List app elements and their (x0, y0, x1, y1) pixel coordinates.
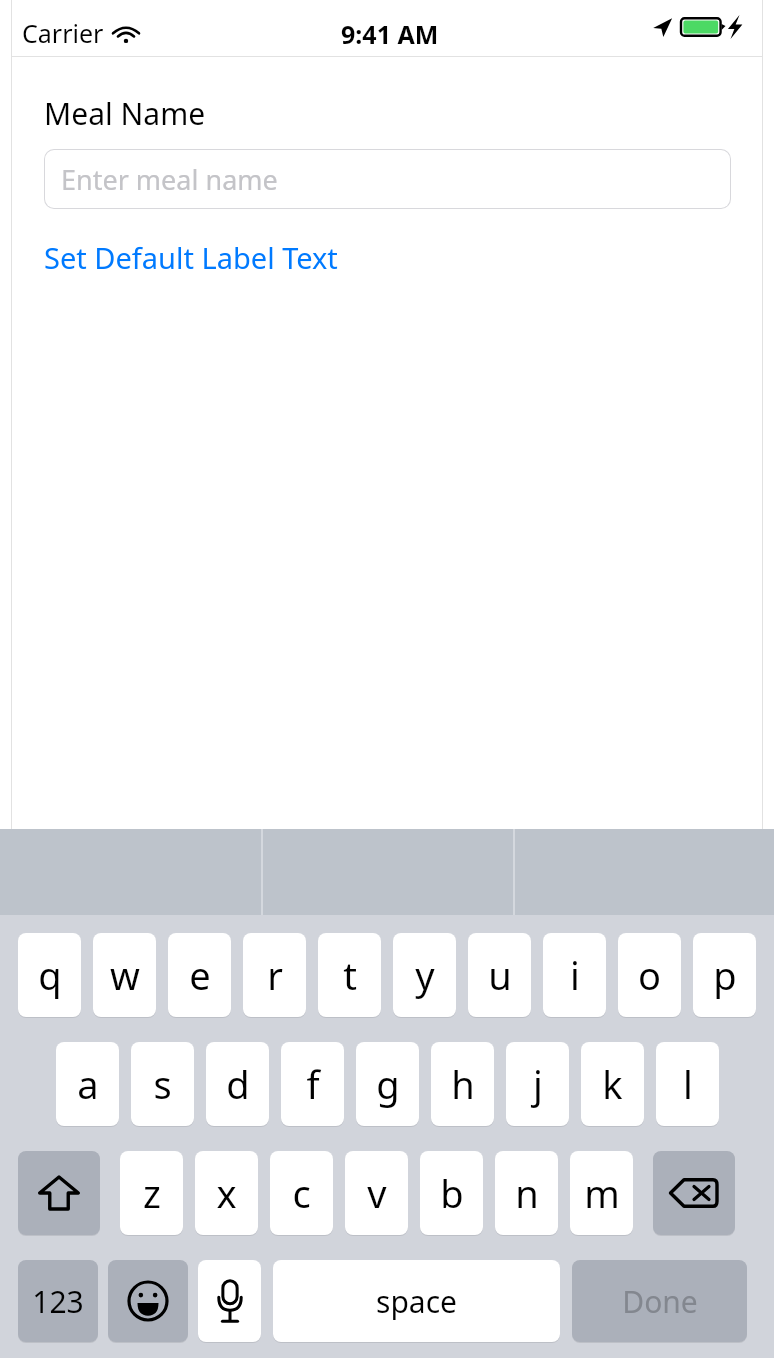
staticText: Meal Name (44, 93, 206, 134)
button[interactable]: y (393, 933, 456, 1017)
button[interactable]: g (356, 1042, 419, 1126)
staticText: Carrier (22, 16, 104, 50)
button[interactable]: Emoji keyboard (108, 1260, 188, 1342)
staticText: u (488, 949, 512, 1001)
staticText: w (110, 949, 140, 1001)
staticText: y (415, 949, 435, 1001)
button[interactable]: a (56, 1042, 119, 1126)
staticText: j (533, 1058, 543, 1110)
staticText: Done (622, 1281, 698, 1322)
staticText: f (306, 1058, 320, 1110)
button[interactable]: n (495, 1151, 558, 1235)
staticText: a (77, 1058, 99, 1110)
button[interactable]: Enter meal name (44, 149, 731, 209)
button[interactable]: 123 (18, 1260, 98, 1342)
staticText: 9:41 AM (341, 17, 439, 51)
staticText: Set Default Label Text (44, 238, 338, 277)
staticText: 123 (32, 1281, 84, 1322)
staticText: Enter meal name (61, 161, 278, 198)
button[interactable]: w (93, 933, 156, 1017)
button[interactable]: u (468, 933, 531, 1017)
staticText: d (226, 1058, 250, 1110)
button[interactable]: r (243, 933, 306, 1017)
staticText: h (451, 1058, 475, 1110)
staticText: n (515, 1167, 539, 1219)
staticText: m (584, 1167, 620, 1219)
button[interactable]: s (131, 1042, 194, 1126)
staticText: o (638, 949, 661, 1001)
button[interactable]: Dictation (198, 1260, 261, 1342)
button[interactable]: e (168, 933, 231, 1017)
staticText: g (376, 1058, 400, 1110)
button[interactable]: b (420, 1151, 483, 1235)
button[interactable]: t (318, 933, 381, 1017)
button[interactable]: k (581, 1042, 644, 1126)
button[interactable]: Done (572, 1260, 747, 1342)
staticText: x (216, 1167, 237, 1219)
staticText: p (713, 949, 737, 1001)
button[interactable]: Backspace (653, 1151, 735, 1235)
staticText: e (189, 949, 211, 1001)
button[interactable]: c (270, 1151, 333, 1235)
staticText: v (367, 1167, 387, 1219)
button[interactable]: h (431, 1042, 494, 1126)
button[interactable]: d (206, 1042, 269, 1126)
staticText: i (570, 949, 580, 1001)
staticText: k (602, 1058, 623, 1110)
button[interactable]: m (570, 1151, 633, 1235)
button[interactable]: v (345, 1151, 408, 1235)
staticText: r (267, 949, 283, 1001)
staticText: space (376, 1281, 457, 1322)
staticText: z (143, 1167, 161, 1219)
staticText: l (683, 1058, 693, 1110)
button[interactable]: Shift (18, 1151, 100, 1235)
staticText: t (343, 949, 357, 1001)
button[interactable]: p (693, 933, 756, 1017)
button[interactable]: q (18, 933, 81, 1017)
button[interactable]: l (656, 1042, 719, 1126)
staticText: q (38, 949, 62, 1001)
staticText: s (153, 1058, 172, 1110)
button[interactable]: f (281, 1042, 344, 1126)
button[interactable]: z (120, 1151, 183, 1235)
button[interactable]: space (273, 1260, 560, 1342)
button[interactable]: Set Default Label Text (44, 238, 338, 277)
button[interactable]: j (506, 1042, 569, 1126)
staticText: c (292, 1167, 311, 1219)
button[interactable]: i (543, 933, 606, 1017)
staticText: b (440, 1167, 464, 1219)
button[interactable]: o (618, 933, 681, 1017)
button[interactable]: x (195, 1151, 258, 1235)
